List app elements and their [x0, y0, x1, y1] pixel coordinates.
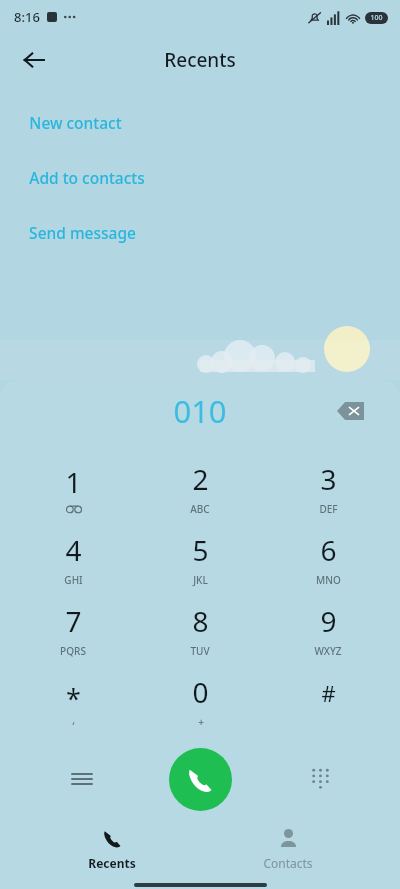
staticText: 9: [320, 602, 337, 640]
staticText: #: [321, 678, 336, 708]
staticText: 7: [65, 602, 82, 640]
button[interactable]: Recents: [47, 820, 177, 878]
staticText: MNO: [316, 573, 341, 587]
button[interactable]: 1: [18, 452, 128, 523]
staticText: 1: [65, 463, 82, 501]
button[interactable]: *: [18, 665, 128, 736]
staticText: 4: [65, 531, 82, 569]
staticText: PQRS: [60, 644, 86, 658]
staticText: 5: [192, 531, 209, 569]
staticText: 8: [192, 602, 209, 640]
button[interactable]: 4: [18, 523, 128, 594]
staticText: Recents: [164, 47, 236, 73]
staticText: Send message: [29, 222, 136, 243]
staticText: 6: [320, 531, 337, 569]
button[interactable]: 9: [273, 594, 383, 665]
staticText: GHI: [64, 573, 83, 587]
button[interactable]: 5: [145, 523, 255, 594]
staticText: +: [198, 715, 204, 729]
button[interactable]: New contact: [0, 110, 400, 134]
staticText: ABC: [190, 502, 210, 516]
staticText: 100: [370, 13, 383, 23]
staticText: New contact: [29, 112, 122, 133]
button[interactable]: Send message: [0, 220, 400, 244]
button[interactable]: Add to contacts: [0, 165, 400, 189]
button[interactable]: #: [273, 665, 383, 736]
button[interactable]: Call: [169, 748, 232, 811]
staticText: Contacts: [263, 855, 313, 871]
button[interactable]: 7: [18, 594, 128, 665]
staticText: 2: [192, 460, 209, 498]
button[interactable]: 0: [145, 665, 255, 736]
button[interactable]: Keypad: [298, 757, 342, 801]
staticText: TUV: [190, 644, 210, 658]
staticText: 010: [173, 390, 227, 432]
staticText: ,: [72, 713, 75, 727]
button[interactable]: Menu: [60, 757, 104, 801]
button[interactable]: Back: [10, 36, 58, 84]
staticText: Add to contacts: [29, 167, 145, 188]
staticText: WXYZ: [314, 644, 342, 658]
staticText: Recents: [88, 855, 136, 871]
staticText: JKL: [193, 573, 208, 587]
staticText: 3: [320, 460, 337, 498]
button[interactable]: 3: [273, 452, 383, 523]
button[interactable]: 2: [145, 452, 255, 523]
button[interactable]: 6: [273, 523, 383, 594]
staticText: DEF: [319, 502, 338, 516]
staticText: 0: [192, 673, 209, 711]
staticText: 8:16: [14, 8, 40, 26]
button[interactable]: Delete: [328, 389, 372, 433]
button[interactable]: Contacts: [223, 820, 353, 878]
button[interactable]: 8: [145, 594, 255, 665]
staticText: *: [66, 680, 81, 717]
